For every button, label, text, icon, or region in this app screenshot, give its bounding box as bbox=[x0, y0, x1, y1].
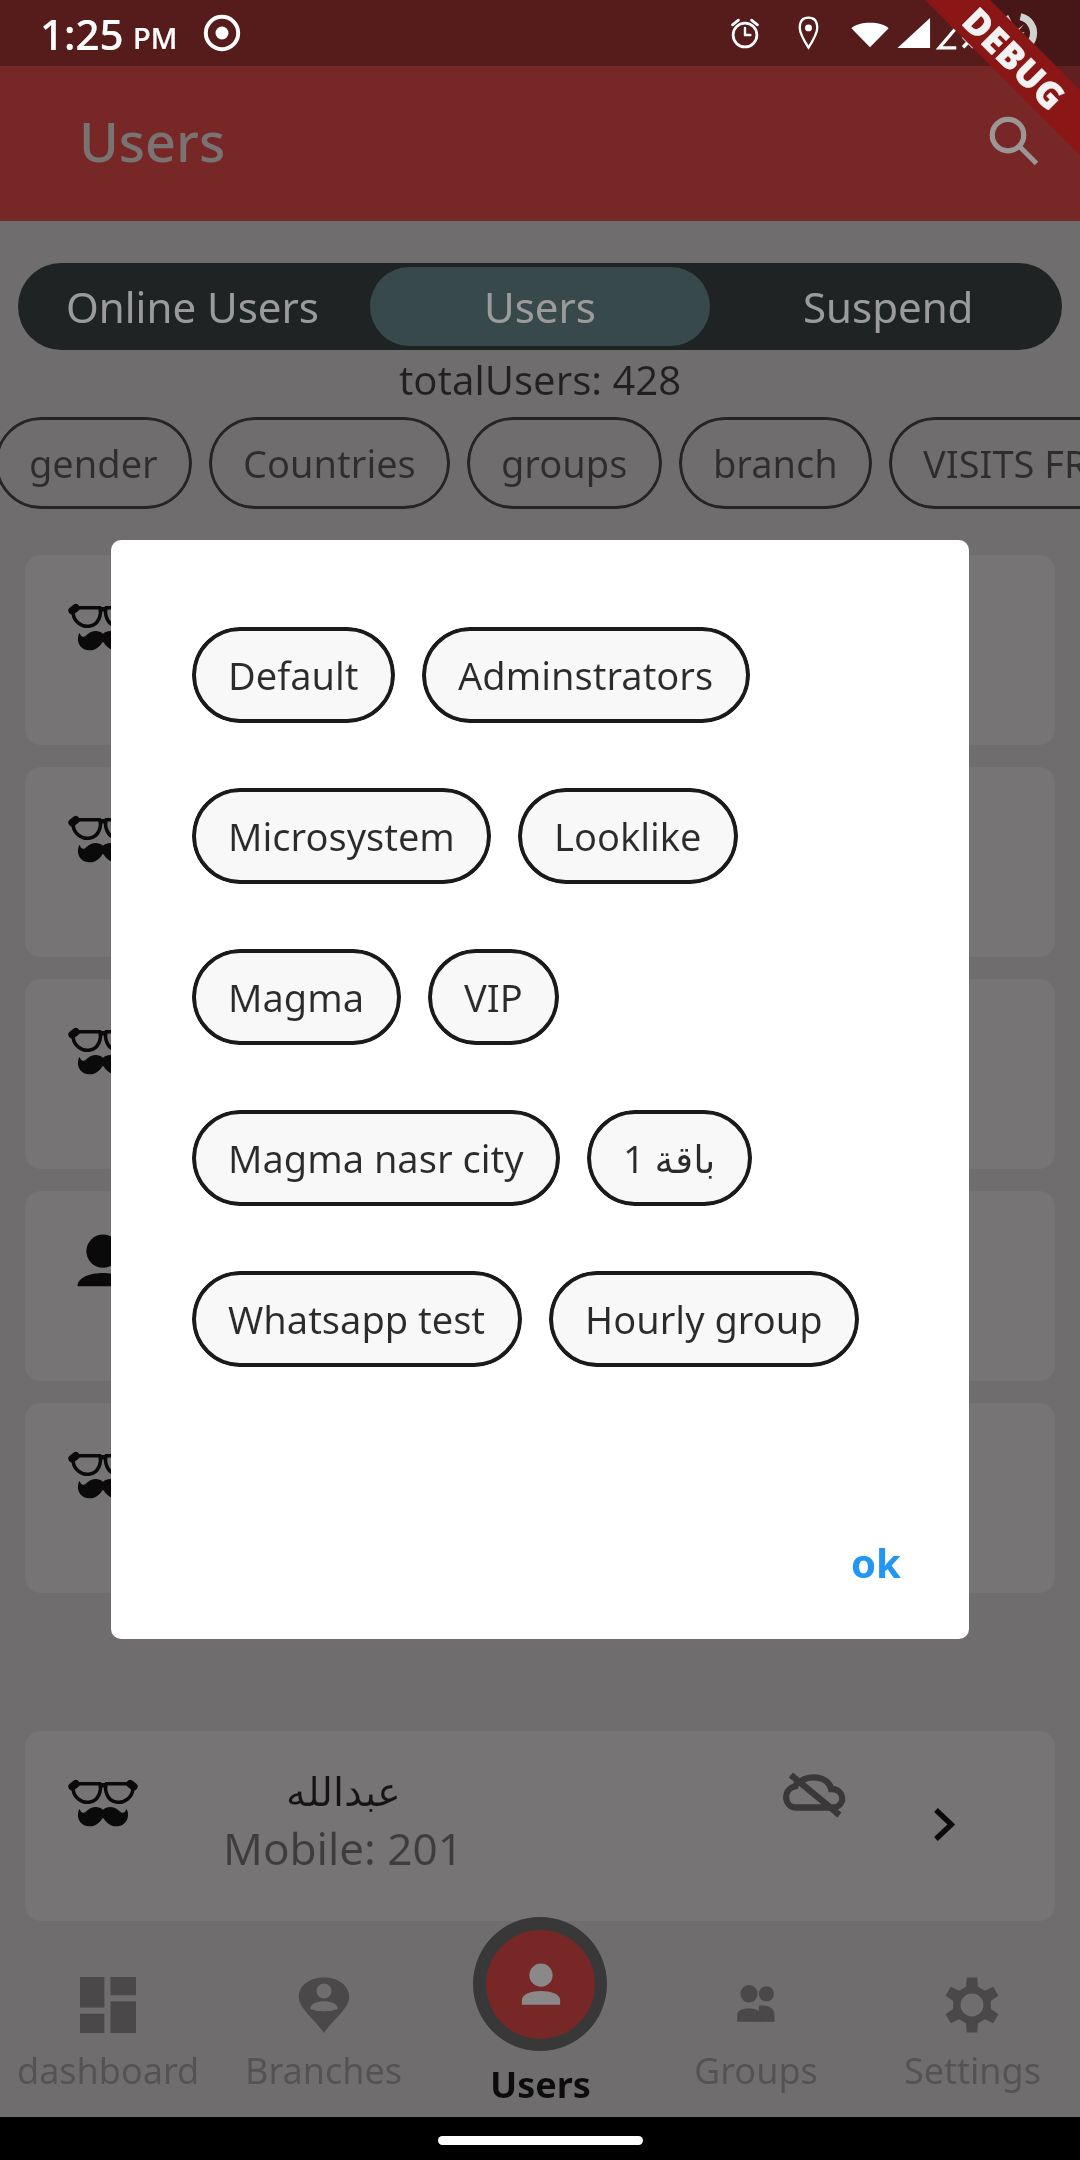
staticText: Online Users bbox=[66, 278, 319, 335]
button[interactable]: Search bbox=[969, 99, 1059, 189]
staticText: Mobile: 201 bbox=[223, 854, 463, 914]
staticText: Settings bbox=[904, 2046, 1041, 2095]
staticText: Users bbox=[484, 278, 596, 335]
button[interactable]: عبدالله bbox=[25, 979, 1055, 1169]
button[interactable]: Hourly group bbox=[549, 1271, 859, 1367]
staticText: gender bbox=[29, 437, 158, 489]
staticText: Adminstrators bbox=[458, 649, 714, 701]
staticText: عبدالله bbox=[286, 805, 401, 852]
staticText: Mobile: 201 bbox=[223, 642, 463, 702]
button[interactable]: عبدالله bbox=[25, 767, 1055, 957]
staticText: Looklike bbox=[554, 810, 702, 862]
staticText: dashboard bbox=[17, 2046, 200, 2095]
staticText: باقة 1 bbox=[623, 1132, 716, 1184]
button[interactable]: عبدالله bbox=[25, 555, 1055, 745]
staticText: Suspend bbox=[803, 278, 974, 335]
staticText: totalUsers: 428 bbox=[0, 352, 1080, 406]
button[interactable]: Suspend bbox=[718, 267, 1058, 346]
button[interactable]: Looklike bbox=[518, 788, 738, 884]
button[interactable]: Users bbox=[432, 1917, 648, 2109]
button[interactable]: Online Users bbox=[22, 267, 362, 346]
button[interactable]: groups bbox=[467, 417, 662, 509]
button[interactable]: Default bbox=[192, 627, 395, 723]
staticText: Hourly group bbox=[585, 1293, 823, 1345]
staticText: Mobile: 201 bbox=[223, 1066, 463, 1126]
button[interactable]: Magma nasr city bbox=[192, 1110, 560, 1206]
button[interactable]: ok bbox=[833, 1525, 919, 1599]
button[interactable]: Magma bbox=[192, 949, 401, 1045]
button[interactable]: Adminstrators bbox=[422, 627, 750, 723]
staticText: VISITS FROM bbox=[923, 437, 1080, 489]
button[interactable]: Whatsapp test bbox=[192, 1271, 522, 1367]
button[interactable]: Users bbox=[370, 267, 710, 346]
button[interactable]: VISITS FROM bbox=[889, 417, 1080, 509]
button[interactable]: عبدالله bbox=[25, 1403, 1055, 1593]
staticText: عبدالله bbox=[286, 1017, 401, 1064]
staticText: VIP bbox=[464, 971, 523, 1023]
button[interactable]: عبدالله bbox=[25, 1731, 1055, 1921]
staticText: 1:25 bbox=[40, 5, 124, 62]
staticText: Mobile: 201 bbox=[223, 1278, 463, 1338]
button[interactable]: Microsystem bbox=[192, 788, 491, 884]
staticText: Users bbox=[490, 2060, 591, 2109]
staticText: Magma bbox=[228, 971, 365, 1023]
button[interactable]: branch bbox=[679, 417, 872, 509]
staticText: Branches bbox=[245, 2046, 403, 2095]
staticText: Microsystem bbox=[228, 810, 455, 862]
button[interactable]: VIP bbox=[428, 949, 559, 1045]
staticText: Magma nasr city bbox=[228, 1132, 524, 1184]
staticText: Whatsapp test bbox=[228, 1293, 486, 1345]
button[interactable]: Branches bbox=[216, 1958, 432, 2095]
staticText: Groups bbox=[694, 2046, 818, 2095]
button[interactable]: Groups bbox=[648, 1958, 864, 2095]
staticText: Users bbox=[79, 104, 226, 178]
staticText: عبدالله bbox=[286, 1769, 401, 1816]
staticText: DEBUG bbox=[952, 0, 1077, 121]
staticText: Countries bbox=[243, 437, 416, 489]
button[interactable]: gender bbox=[0, 417, 192, 509]
staticText: branch bbox=[713, 437, 838, 489]
staticText: ok bbox=[851, 1535, 901, 1589]
staticText: Mobile: 201 bbox=[223, 1818, 463, 1878]
button[interactable]: عبدالله bbox=[25, 1191, 1055, 1381]
staticText: عبدالله bbox=[286, 593, 401, 640]
staticText: groups bbox=[501, 437, 628, 489]
staticText: Default bbox=[228, 649, 359, 701]
button[interactable]: Settings bbox=[864, 1958, 1080, 2095]
button[interactable]: Countries bbox=[209, 417, 450, 509]
staticText: عبدالله bbox=[286, 1229, 401, 1276]
button[interactable]: dashboard bbox=[0, 1958, 216, 2095]
button[interactable]: باقة 1 bbox=[587, 1110, 752, 1206]
staticText: PM bbox=[133, 18, 178, 57]
